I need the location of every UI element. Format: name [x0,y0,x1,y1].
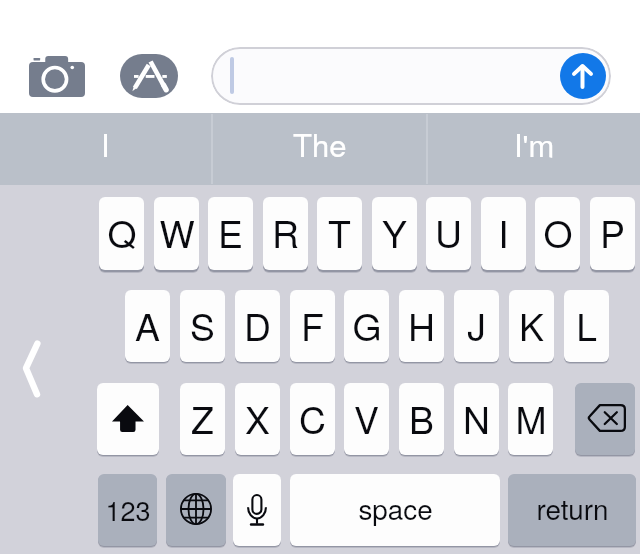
button[interactable]: Camera [15,45,99,106]
staticText: S [190,298,215,351]
staticText: N [463,391,490,444]
button[interactable]: K [509,290,554,362]
button[interactable]: Shift [97,383,159,455]
button[interactable]: S [180,290,225,362]
button[interactable]: W [154,197,199,270]
button[interactable]: Z [180,383,225,455]
staticText: I'm [514,121,555,165]
button[interactable]: H [399,290,444,362]
button[interactable]: I'm [428,113,640,185]
button[interactable]: M [508,383,553,455]
staticText: I [101,121,110,165]
staticText: J [467,298,486,351]
staticText: P [600,205,625,258]
button[interactable]: Y [372,197,417,270]
staticText: C [299,391,326,444]
staticText: E [218,205,243,258]
button[interactable]: T [317,197,362,270]
staticText: V [354,391,379,444]
staticText: I [498,205,509,258]
staticText: X [245,391,270,444]
staticText: The [293,121,347,165]
staticText: L [576,298,597,351]
button[interactable]: N [454,383,499,455]
button[interactable]: App Store [113,45,184,106]
button[interactable]: B [399,383,444,455]
button[interactable]: A [125,290,170,362]
button[interactable]: Send [560,53,606,99]
button[interactable]: X [235,383,280,455]
staticText: T [328,205,351,258]
staticText: 123 [105,490,151,529]
staticText: U [435,205,462,258]
button[interactable]: I [0,113,211,185]
button[interactable]: Change keyboard [166,474,226,546]
staticText: M [515,391,547,444]
staticText: Q [107,205,137,258]
button[interactable]: O [535,197,580,270]
button[interactable]: D [235,290,280,362]
staticText: space [358,488,433,528]
staticText: Y [382,205,407,258]
staticText: A [135,298,160,351]
button[interactable]: Dictation [233,474,281,546]
button[interactable]: U [426,197,471,270]
button[interactable]: E [208,197,253,270]
staticText: Z [191,391,214,444]
staticText: K [519,298,544,351]
button[interactable]: J [454,290,499,362]
button[interactable]: L [564,290,609,362]
button[interactable]: return [508,474,636,546]
button[interactable]: F [290,290,335,362]
staticText: H [408,298,435,351]
button[interactable]: Q [99,197,144,270]
staticText: R [272,205,299,258]
staticText: return [536,488,609,528]
button[interactable]: V [344,383,389,455]
button[interactable]: P [590,197,635,270]
button[interactable]: C [290,383,335,455]
button[interactable]: G [344,290,389,362]
staticText: F [301,298,324,351]
staticText: O [543,205,573,258]
button[interactable]: Backspace [575,383,635,455]
staticText: W [159,205,195,258]
staticText: G [352,298,382,351]
button[interactable] [211,47,611,105]
staticText: B [409,391,434,444]
staticText: D [244,298,271,351]
button[interactable]: space [290,474,500,546]
button[interactable]: 123 [98,474,157,546]
button[interactable]: The [213,113,427,185]
button[interactable]: R [263,197,308,270]
button[interactable]: I [481,197,526,270]
